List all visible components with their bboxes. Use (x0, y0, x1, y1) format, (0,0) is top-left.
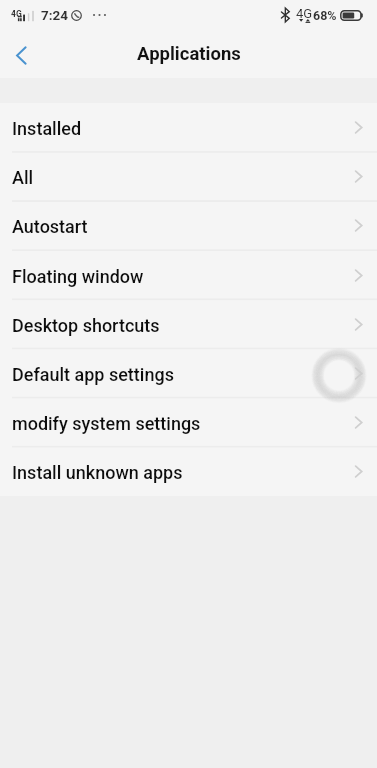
staticText: modify system settings (12, 413, 201, 434)
staticText: Installed (12, 118, 82, 139)
button[interactable]: Autostart (0, 201, 377, 250)
button[interactable]: Install unknown apps (0, 447, 377, 496)
staticText: Desktop shortcuts (12, 315, 160, 336)
staticText: 4G (11, 9, 22, 19)
staticText: All (12, 167, 34, 188)
staticText: 4G (296, 6, 313, 21)
staticText: Floating window (12, 266, 144, 287)
button[interactable]: Desktop shortcuts (0, 300, 377, 349)
button[interactable]: Floating window (0, 250, 377, 300)
button[interactable]: Default app settings (0, 349, 377, 398)
button[interactable]: Installed (0, 103, 377, 152)
staticText: Default app settings (12, 364, 174, 385)
staticText: Applications (137, 43, 241, 65)
button[interactable]: All (0, 152, 377, 201)
button[interactable]: Back (0, 32, 44, 76)
staticText: Install unknown apps (12, 462, 183, 483)
staticText: 7:24 (41, 7, 69, 23)
staticText: 68% (313, 8, 337, 23)
staticText: Autostart (12, 216, 88, 237)
button[interactable]: modify system settings (0, 398, 377, 447)
